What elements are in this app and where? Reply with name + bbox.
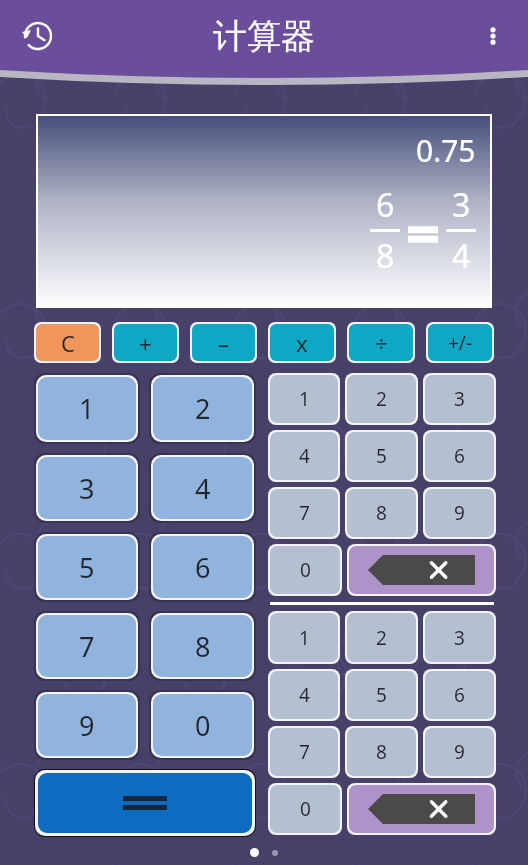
staticText: 8 <box>195 628 211 665</box>
staticText: 4 <box>195 470 211 507</box>
button[interactable]: 1 <box>38 377 136 440</box>
button[interactable]: 9 <box>38 694 136 756</box>
staticText: 6 <box>454 682 465 708</box>
staticText: 6 <box>376 183 395 227</box>
staticText: 1 <box>299 386 310 412</box>
staticText: 2 <box>376 386 387 412</box>
staticText: 3 <box>452 183 471 227</box>
staticText: 7 <box>299 500 310 526</box>
button[interactable]: 3 <box>38 457 136 519</box>
staticText: 8 <box>376 739 387 765</box>
staticText: +/- <box>448 330 473 356</box>
staticText: 8 <box>376 500 387 526</box>
button[interactable]: 3 <box>425 375 494 423</box>
staticText: 0 <box>195 707 211 744</box>
staticText: 7 <box>299 739 310 765</box>
button[interactable]: 3 <box>425 613 494 662</box>
button[interactable]: History <box>14 12 62 60</box>
button[interactable]: 9 <box>425 489 494 537</box>
staticText: 4 <box>299 682 310 708</box>
button[interactable] <box>38 773 252 833</box>
button[interactable]: 4 <box>270 671 338 719</box>
staticText: C <box>61 328 75 358</box>
button[interactable]: 6 <box>425 671 494 719</box>
staticText: 9 <box>454 500 465 526</box>
button[interactable]: 2 <box>153 377 252 440</box>
button[interactable]: 0 <box>153 694 252 756</box>
button[interactable]: 7 <box>270 489 338 537</box>
button[interactable]: 2 <box>347 375 416 423</box>
button[interactable]: 7 <box>270 728 338 776</box>
staticText: 计算器 <box>213 15 315 58</box>
button[interactable]: 8 <box>153 615 252 677</box>
button[interactable]: 1 <box>270 613 338 662</box>
staticText: 7 <box>79 628 95 665</box>
staticText: 2 <box>195 390 211 427</box>
staticText: 0.75 <box>416 130 476 171</box>
button[interactable]: 8 <box>347 489 416 537</box>
staticText: 6 <box>195 549 211 586</box>
staticText: 1 <box>79 390 95 427</box>
staticText: x <box>296 328 308 358</box>
staticText: + <box>139 328 152 358</box>
button[interactable]: – <box>192 324 255 361</box>
button[interactable]: 5 <box>347 671 416 719</box>
button[interactable]: 0 <box>270 785 340 833</box>
staticText: 0 <box>300 796 311 822</box>
button[interactable]: 2 <box>347 613 416 662</box>
staticText: ÷ <box>375 328 388 358</box>
button[interactable]: 1 <box>270 375 338 423</box>
staticText: 4 <box>299 443 310 469</box>
button[interactable]: 6 <box>153 536 252 598</box>
staticText: 0 <box>300 557 311 583</box>
staticText: 8 <box>376 234 395 278</box>
button[interactable]: +/- <box>428 324 492 361</box>
staticText: 9 <box>79 707 95 744</box>
button[interactable]: C <box>36 324 99 361</box>
button[interactable]: 5 <box>38 536 136 598</box>
button[interactable]: 5 <box>347 432 416 480</box>
staticText: 6 <box>454 443 465 469</box>
staticText: 5 <box>376 443 387 469</box>
staticText: 5 <box>79 549 95 586</box>
button[interactable]: x <box>270 324 334 361</box>
staticText: 9 <box>454 739 465 765</box>
staticText: 3 <box>454 386 465 412</box>
button[interactable]: 8 <box>347 728 416 776</box>
button[interactable]: Backspace <box>349 785 494 833</box>
button[interactable]: More options <box>470 13 516 59</box>
button[interactable]: 6 <box>425 432 494 480</box>
button[interactable]: Backspace <box>349 546 494 594</box>
button[interactable]: 7 <box>38 615 136 677</box>
staticText: 4 <box>452 234 471 278</box>
staticText: – <box>218 328 230 358</box>
button[interactable]: 9 <box>425 728 494 776</box>
button[interactable]: 0 <box>270 546 340 594</box>
staticText: 2 <box>376 625 387 651</box>
staticText: 1 <box>299 625 310 651</box>
button[interactable]: ÷ <box>349 324 413 361</box>
button[interactable]: + <box>114 324 177 361</box>
staticText: 3 <box>454 625 465 651</box>
button[interactable]: 4 <box>153 457 252 519</box>
staticText: 5 <box>376 682 387 708</box>
button[interactable]: 4 <box>270 432 338 480</box>
staticText: 3 <box>79 470 95 507</box>
